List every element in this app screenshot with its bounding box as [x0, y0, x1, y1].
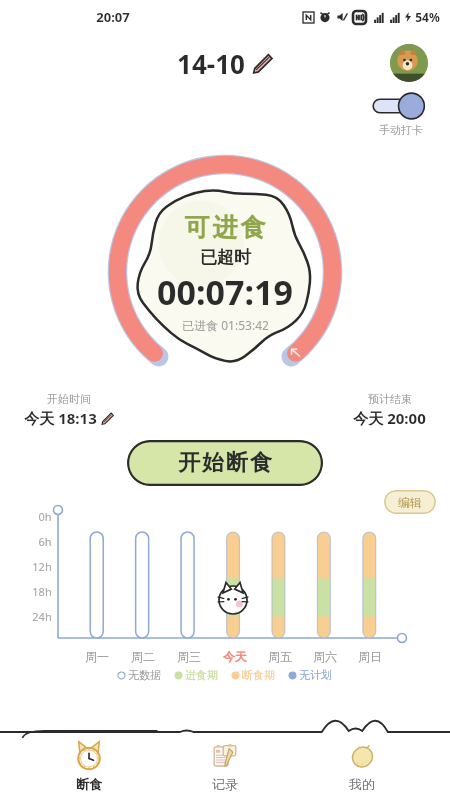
staticText: 周三 — [177, 649, 201, 664]
staticText: 今天 18:13 — [24, 408, 97, 428]
button[interactable]: 开始时间 — [24, 392, 114, 428]
button[interactable]: 周一 — [74, 649, 120, 664]
button[interactable]: 记录 — [177, 734, 273, 800]
button[interactable]: 编辑 — [384, 490, 436, 514]
staticText: 断食期 — [242, 668, 275, 682]
staticText: 0h — [38, 509, 52, 524]
staticText: 周五 — [268, 649, 292, 664]
button[interactable]: 周六 — [302, 649, 347, 664]
staticText: 今天 20:00 — [353, 408, 426, 428]
staticText: 24h — [32, 609, 52, 624]
staticText: 我的 — [349, 776, 375, 792]
button[interactable]: 开始断食 — [127, 440, 323, 486]
staticText: 今天 — [223, 649, 247, 664]
staticText: 12h — [32, 559, 52, 574]
staticText: 周一 — [85, 649, 109, 664]
button[interactable]: 周五 — [257, 649, 302, 664]
staticText: 编辑 — [398, 495, 422, 510]
staticText: 6h — [38, 534, 52, 549]
staticText: 可进食 — [183, 212, 267, 243]
staticText: 断食 — [76, 776, 102, 792]
staticText: 已进食 01:53:42 — [182, 317, 269, 333]
button[interactable]: 我的 — [314, 734, 410, 800]
staticText: 20:07 — [96, 8, 130, 26]
button[interactable]: 周三 — [166, 649, 212, 664]
staticText: 已超时 — [200, 247, 251, 268]
staticText: 14-10 — [177, 46, 245, 81]
button[interactable]: 周二 — [120, 649, 166, 664]
staticText: 无数据 — [128, 668, 161, 682]
staticText: 无计划 — [299, 668, 332, 682]
staticText: 周二 — [131, 649, 155, 664]
staticText: 记录 — [212, 776, 238, 792]
button[interactable]: 今天 — [212, 649, 257, 664]
staticText: 开始断食 — [177, 449, 273, 477]
staticText: 手动打卡 — [379, 123, 423, 137]
staticText: 周六 — [313, 649, 337, 664]
button[interactable]: 手动打卡 — [372, 92, 430, 137]
staticText: 开始时间 — [47, 392, 91, 406]
staticText: 进食期 — [185, 668, 218, 682]
staticText: 18h — [32, 584, 52, 599]
button[interactable]: 预计结束 — [353, 392, 426, 428]
staticText: 00:07:19 — [157, 269, 293, 315]
button[interactable]: 14-10 — [177, 46, 273, 81]
button[interactable]: Profile — [390, 44, 428, 82]
staticText: 预计结束 — [368, 392, 412, 406]
staticText: 54% — [415, 9, 440, 25]
staticText: 周日 — [358, 649, 382, 664]
button[interactable]: 断食 — [41, 734, 137, 800]
button[interactable]: 周日 — [347, 649, 392, 664]
